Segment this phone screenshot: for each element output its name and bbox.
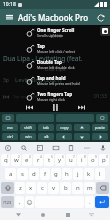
staticText: 0: [106, 155, 108, 159]
staticText: p: [102, 156, 106, 164]
button[interactable]: Stickers: [35, 143, 44, 152]
button[interactable]: v: [48, 182, 59, 194]
button[interactable]: m: [84, 182, 95, 194]
button[interactable]: g: [51, 168, 61, 180]
staticText: s: [21, 170, 24, 178]
button[interactable]: Home: [37, 209, 48, 220]
button[interactable]: Keyboard: [2, 114, 14, 122]
button[interactable]: l: [95, 168, 105, 180]
staticText: Mouse left press and hold: [37, 81, 80, 86]
button[interactable]: GIF: [51, 143, 60, 152]
staticText: d: [32, 170, 36, 178]
button[interactable]: Recents: [62, 209, 73, 220]
button[interactable]: tab: [38, 124, 54, 131]
button[interactable]: y: [55, 154, 65, 166]
button[interactable]: z: [15, 182, 25, 194]
button[interactable]: Right: [92, 133, 108, 140]
button[interactable]: k: [84, 168, 94, 180]
button[interactable]: Clipboard: [66, 143, 75, 152]
staticText: tab: [43, 125, 49, 130]
button[interactable]: Emoji: [25, 196, 34, 208]
staticText: copy: [60, 125, 69, 130]
staticText: .: [89, 198, 91, 206]
staticText: Double Tap: [37, 59, 62, 65]
staticText: Tap: [37, 43, 45, 49]
button[interactable]: Up: [74, 124, 90, 131]
button[interactable]: Voice: [98, 143, 107, 152]
staticText: g: [54, 170, 58, 178]
button[interactable]: q: [1, 154, 10, 166]
button[interactable]: Previous: [22, 102, 36, 112]
staticText: 3: [29, 155, 31, 159]
button[interactable]: r: [33, 154, 43, 166]
staticText: 2: [18, 155, 20, 159]
button[interactable]: c: [37, 182, 47, 194]
button[interactable]: Backspace: [96, 182, 109, 194]
staticText: v: [52, 184, 56, 192]
button[interactable]: Backspace: [96, 114, 108, 122]
button[interactable]: Down: [74, 133, 90, 140]
button[interactable]: paste: [92, 124, 108, 131]
button[interactable]: Next: [74, 102, 88, 112]
button[interactable]: shift: [20, 124, 36, 131]
button[interactable]: f: [40, 168, 50, 180]
button[interactable]: e: [22, 154, 32, 166]
button[interactable]: b: [60, 182, 71, 194]
button[interactable]: Pause: [48, 102, 62, 112]
button[interactable]: Search: [19, 143, 28, 152]
button[interactable]: copy: [56, 124, 72, 131]
button[interactable]: Left: [56, 133, 72, 140]
button[interactable]: x: [26, 182, 36, 194]
staticText: q: [4, 156, 8, 164]
staticText: l: [99, 170, 101, 178]
staticText: u: [69, 156, 73, 164]
staticText: 7: [73, 155, 75, 159]
button[interactable]: ,: [15, 196, 24, 208]
button[interactable]: Hide keyboard: [86, 209, 97, 220]
staticText: z: [19, 184, 22, 192]
staticText: r: [37, 156, 40, 164]
button[interactable]: h: [62, 168, 72, 180]
button[interactable]: o: [88, 154, 98, 166]
button[interactable]: n: [72, 182, 83, 194]
staticText: One finger Scroll: [37, 27, 75, 33]
staticText: o: [91, 156, 95, 164]
button[interactable]: Enter: [95, 196, 109, 208]
button[interactable]: ?123: [1, 196, 14, 208]
button[interactable]: t: [44, 154, 54, 166]
staticText: y: [58, 156, 62, 164]
button[interactable]: a: [5, 168, 16, 180]
button[interactable]: Shift: [1, 182, 14, 194]
staticText: t: [48, 156, 51, 164]
staticText: 9: [95, 155, 97, 159]
button[interactable]: .: [85, 196, 94, 208]
button[interactable]: alt: [38, 133, 54, 140]
staticText: Dua Lipa - Levitating (feat. DaBaby) [Of…: [3, 54, 107, 63]
button[interactable]: p: [99, 154, 109, 166]
button[interactable]: i: [77, 154, 87, 166]
button[interactable]: u: [66, 154, 76, 166]
button[interactable]: j: [73, 168, 83, 180]
button[interactable]: Refresh: [95, 12, 106, 23]
button[interactable]: Back: [3, 143, 12, 152]
button[interactable]: win: [20, 133, 36, 140]
button[interactable]: ctrl: [2, 133, 18, 140]
staticText: Dua Lipa: [45, 66, 66, 73]
button[interactable]: Screenshot: [100, 26, 110, 36]
staticText: Tap and hold: [13, 94, 38, 99]
button[interactable]: d: [29, 168, 39, 180]
staticText: 5: [51, 155, 53, 159]
button[interactable]: esc: [2, 124, 18, 131]
button[interactable]: More: [82, 143, 91, 152]
staticText: Mouse left click / select: [37, 49, 75, 54]
staticText: alt: [44, 134, 49, 139]
button[interactable]: Back: [13, 209, 24, 220]
button[interactable]: Menu: [4, 12, 14, 22]
staticText: ctrl: [7, 134, 13, 139]
button[interactable]: w: [11, 154, 21, 166]
button[interactable]: s: [17, 168, 28, 180]
staticText: 3p: [3, 77, 9, 84]
